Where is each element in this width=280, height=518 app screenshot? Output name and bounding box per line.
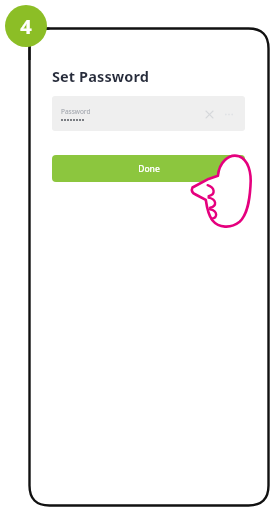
button[interactable]: Clear password [202, 107, 216, 121]
other: Tap Done [190, 152, 252, 230]
staticText: Password [61, 107, 91, 116]
button[interactable]: Password [52, 96, 245, 131]
button[interactable]: Done [52, 155, 245, 182]
staticText: 4 [20, 13, 32, 40]
staticText: Done [138, 163, 160, 175]
staticText: Set Password [52, 66, 149, 86]
